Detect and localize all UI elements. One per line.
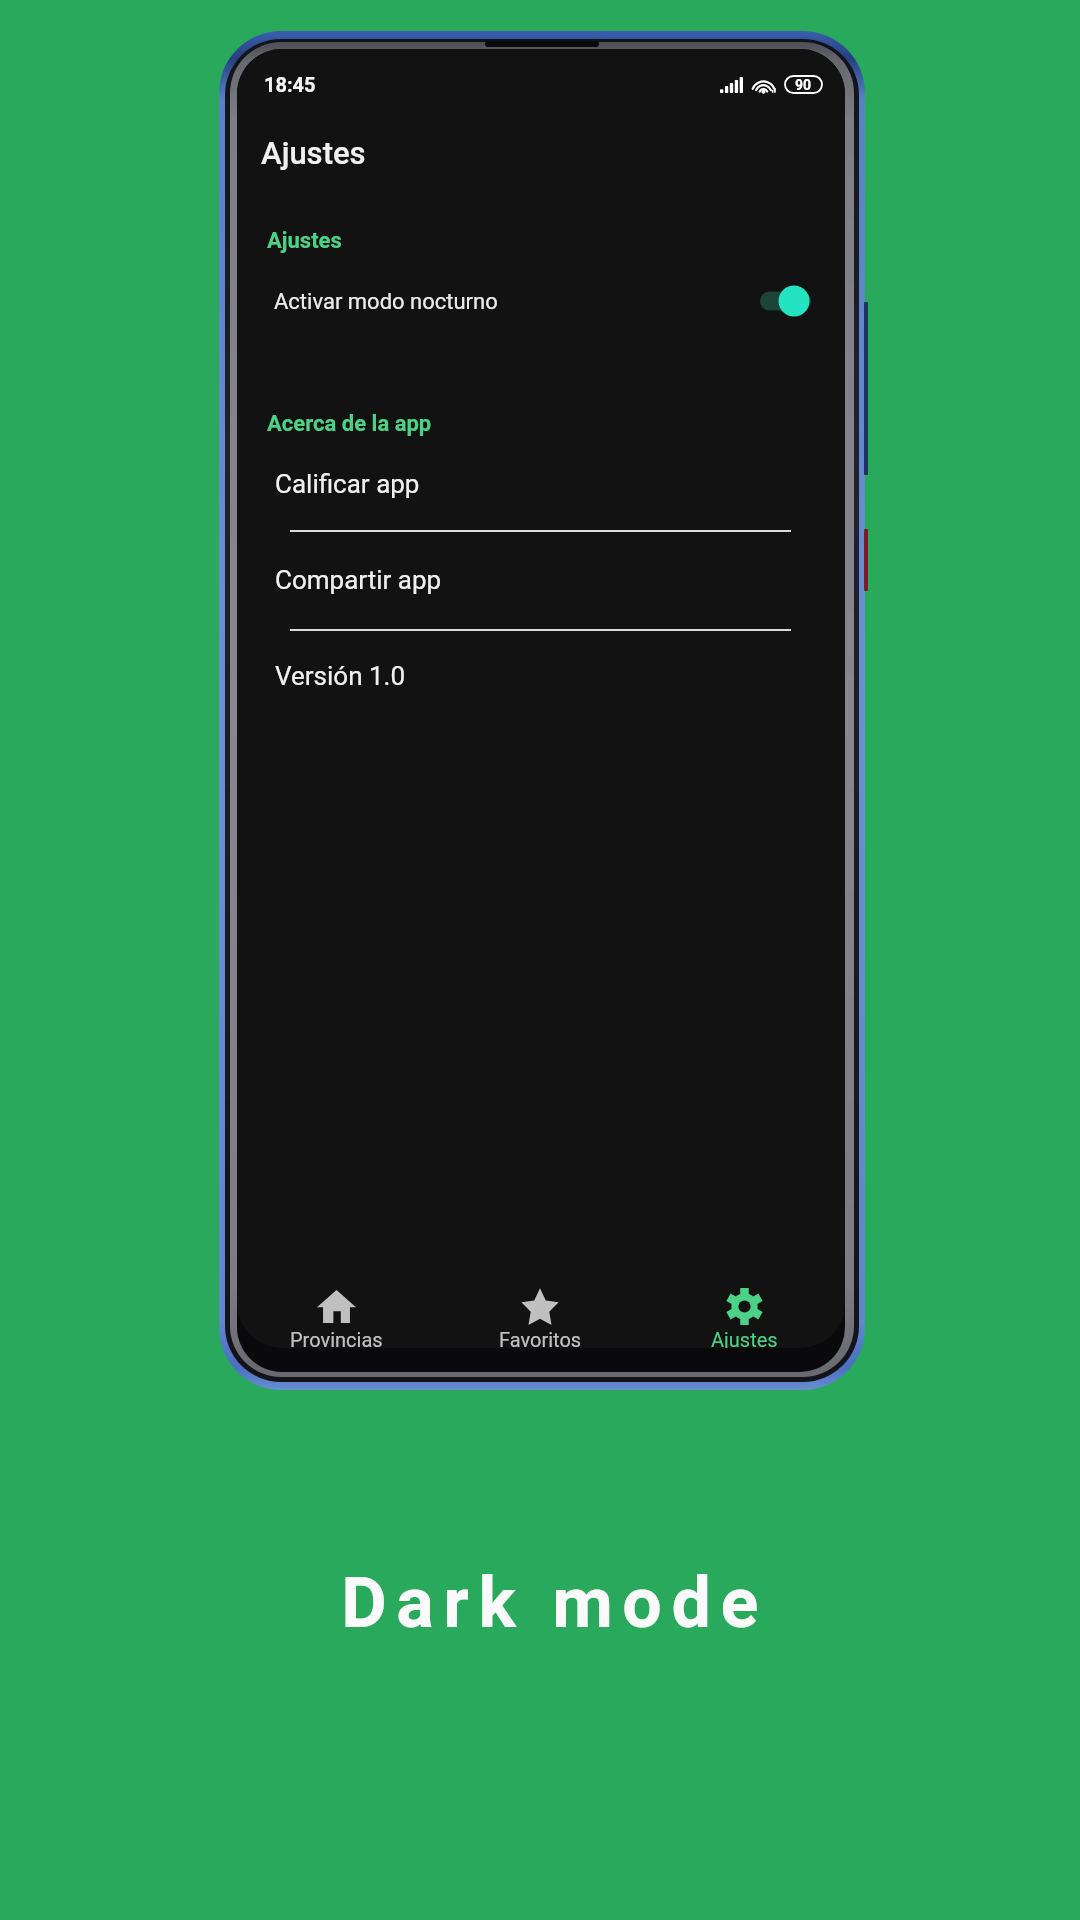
staticText: 18:45 [264, 73, 316, 96]
button[interactable] [237, 272, 845, 328]
button[interactable]: Provincias [237, 1278, 436, 1348]
staticText: Calificar app [275, 469, 420, 499]
button[interactable]: Favoritos [440, 1278, 640, 1348]
staticText: Versión 1.0 [275, 661, 406, 691]
staticText: Compartir app [275, 565, 442, 595]
staticText: Acerca de la app [267, 411, 432, 437]
staticText: Favoritos [499, 1328, 582, 1348]
button[interactable] [237, 460, 845, 510]
button[interactable] [237, 652, 845, 702]
button[interactable]: Activar modo nocturno [752, 284, 822, 318]
staticText: Dark mode [341, 1562, 768, 1644]
staticText: Ajustes [267, 228, 342, 254]
button[interactable] [237, 556, 845, 606]
staticText: Activar modo nocturno [274, 289, 498, 315]
button[interactable]: Ajustes [644, 1278, 844, 1348]
staticText: Ajustes [711, 1328, 778, 1348]
staticText: Ajustes [261, 135, 366, 171]
staticText: 90 [795, 77, 812, 93]
staticText: Provincias [290, 1328, 383, 1348]
